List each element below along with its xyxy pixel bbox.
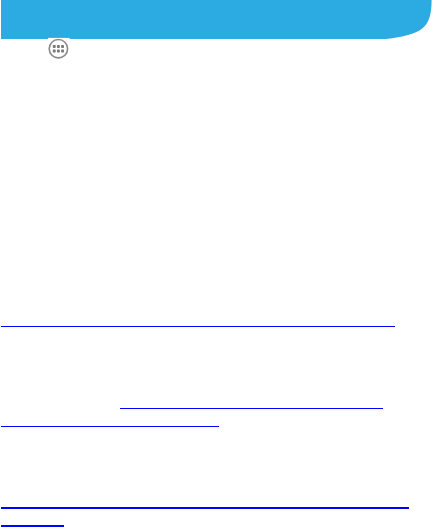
button[interactable]: Link bbox=[1, 313, 395, 327]
button[interactable]: Link bbox=[1, 512, 64, 527]
button[interactable]: Link bbox=[1, 413, 219, 427]
button[interactable]: Apps bbox=[46, 36, 72, 62]
button[interactable]: Link bbox=[120, 395, 383, 409]
button[interactable]: Link bbox=[1, 494, 409, 509]
button[interactable]: Header bbox=[0, 0, 432, 42]
